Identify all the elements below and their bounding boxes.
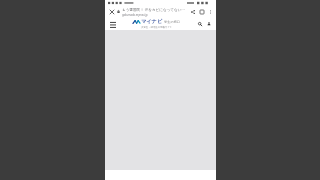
button[interactable]: Close xyxy=(107,7,116,16)
button[interactable]: マイナビ xyxy=(133,18,181,29)
button[interactable]: Tabs xyxy=(197,7,206,16)
button[interactable]: Share xyxy=(188,7,197,16)
button[interactable]: もう雪国民！ 汗をカビになってないマイス… xyxy=(122,7,187,17)
staticText: もう雪国民！ 汗をカビになってないマイス… xyxy=(122,7,187,12)
staticText: gakumado.mynavi.jp xyxy=(122,13,148,17)
button[interactable]: Search xyxy=(196,20,204,28)
button[interactable]: Account xyxy=(205,20,213,28)
staticText: マイナビ xyxy=(141,18,163,25)
staticText: 大学生・就活生の情報サイト xyxy=(141,26,173,29)
button[interactable]: More options xyxy=(206,8,214,16)
button[interactable]: Menu xyxy=(108,19,118,29)
staticText: 学生の窓口 xyxy=(164,20,181,24)
